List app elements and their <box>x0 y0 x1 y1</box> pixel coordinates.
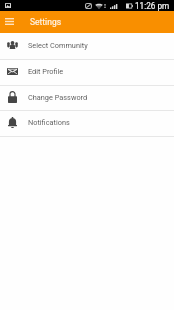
staticText: Settings <box>30 17 62 27</box>
button[interactable]: Change Password <box>0 86 174 110</box>
staticText: Change Password <box>28 93 88 102</box>
button[interactable]: Select Community <box>0 33 174 59</box>
button[interactable]: Notifications <box>0 111 174 136</box>
staticText: Select Community <box>28 41 88 50</box>
staticText: 11:26 pm <box>135 1 170 11</box>
staticText: Notifications <box>28 118 70 127</box>
button[interactable]: Edit Profile <box>0 60 174 85</box>
staticText: Edit Profile <box>28 67 64 76</box>
button[interactable]: Open navigation menu <box>0 11 18 33</box>
